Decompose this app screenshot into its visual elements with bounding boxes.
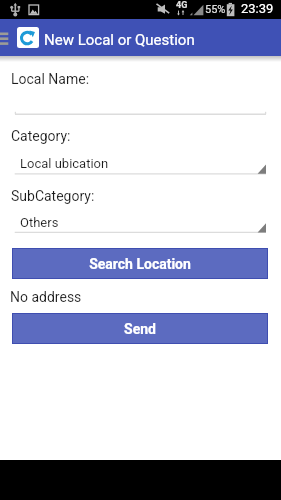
staticText: Category: [11, 128, 71, 144]
button[interactable]: Search Location [12, 248, 268, 279]
button[interactable]: Open navigation menu [0, 19, 12, 56]
staticText: 23:39 [241, 1, 274, 16]
button[interactable]: Send [12, 313, 268, 344]
staticText: No address [10, 289, 82, 305]
button[interactable]: App icon, refresh [17, 27, 39, 48]
button[interactable]: Local ubication [0, 153, 281, 180]
staticText: 4G [176, 0, 188, 11]
staticText: Local Name: [11, 71, 90, 87]
staticText: 55% [205, 3, 226, 16]
staticText: Others [20, 215, 59, 230]
staticText: SubCategory: [11, 188, 95, 204]
staticText: Search Location [89, 256, 191, 272]
staticText: Send [124, 321, 156, 337]
staticText: Local ubication [20, 156, 109, 171]
button[interactable]: Others [0, 212, 281, 238]
staticText: New Local or Question [44, 31, 195, 49]
